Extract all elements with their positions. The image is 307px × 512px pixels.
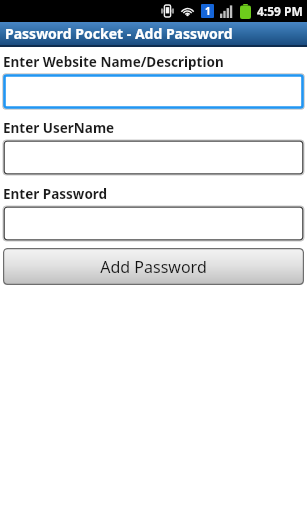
staticText: Enter UserName (3, 119, 115, 137)
staticText: Enter Website Name/Description (3, 53, 224, 71)
staticText: Enter Password (3, 185, 108, 203)
staticText: 4:59 PM (257, 3, 303, 19)
staticText: Add Password (100, 256, 207, 278)
staticText: 1 (205, 4, 211, 18)
button[interactable] (3, 74, 304, 109)
staticText: Password Pocket - Add Password (5, 24, 233, 43)
button[interactable] (3, 140, 304, 175)
button[interactable] (3, 206, 304, 241)
button[interactable]: Add Password (3, 248, 304, 285)
